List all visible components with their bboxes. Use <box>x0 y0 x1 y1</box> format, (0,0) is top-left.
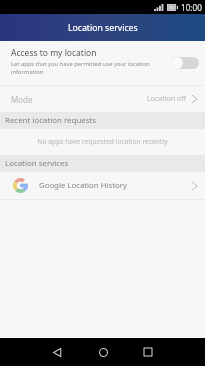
staticText: Location services <box>5 158 69 169</box>
staticText: Recent location requests <box>5 115 97 126</box>
staticText: Google Location History <box>39 180 127 191</box>
staticText: Location off <box>147 94 186 104</box>
button[interactable]: Recent apps <box>135 339 161 365</box>
staticText: Location services <box>68 22 138 34</box>
staticText: Mode <box>11 94 33 105</box>
staticText: 10:00 <box>181 2 202 13</box>
button[interactable]: Access to my location <box>0 41 205 85</box>
staticText: Let apps that you have permitted use you… <box>11 60 167 76</box>
staticText: Access to my location <box>11 47 97 59</box>
button[interactable]: Home <box>90 339 116 365</box>
button[interactable]: Google Location History <box>0 172 205 199</box>
button[interactable]: Mode <box>0 86 205 112</box>
button[interactable]: Back <box>44 339 70 365</box>
staticText: No apps have requested location recently <box>37 137 168 146</box>
button[interactable]: Access to my location toggle <box>171 57 199 69</box>
